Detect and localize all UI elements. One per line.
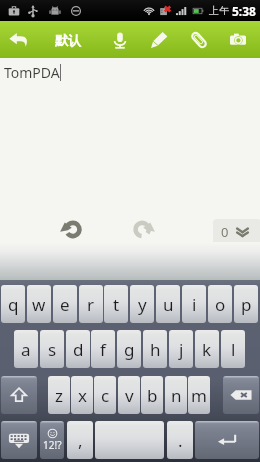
button[interactable]: y [130, 285, 154, 323]
staticText: y [138, 293, 147, 316]
button[interactable]: 默认 [37, 21, 99, 58]
staticText: k [202, 338, 212, 361]
button[interactable]: z [48, 376, 70, 414]
staticText: v [125, 384, 134, 407]
button[interactable]: 12!? [40, 421, 64, 459]
staticText: g [124, 338, 135, 361]
staticText: , [78, 429, 83, 452]
button[interactable]: 0 [213, 219, 260, 245]
button[interactable]: l [221, 330, 245, 368]
staticText: q [8, 293, 19, 316]
button[interactable]: Delete [223, 376, 259, 414]
staticText: . [178, 429, 183, 452]
staticText: w [32, 293, 46, 316]
button[interactable]: a [14, 330, 38, 368]
button[interactable]: Undo [54, 213, 86, 245]
staticText: r [87, 293, 95, 316]
button[interactable]: c [94, 376, 116, 414]
button[interactable]: h [143, 330, 167, 368]
staticText: o [215, 293, 226, 316]
button[interactable]: i [182, 285, 206, 323]
staticText: 上午 [209, 4, 229, 17]
button[interactable]: x [71, 376, 93, 414]
button[interactable]: g [117, 330, 141, 368]
button[interactable]: v [118, 376, 140, 414]
button[interactable]: m [188, 376, 210, 414]
button[interactable]: Hide keyboard [1, 421, 37, 459]
staticText: n [171, 384, 182, 407]
staticText: m [191, 384, 207, 407]
staticText: 12!? [43, 438, 62, 452]
button[interactable]: f [91, 330, 115, 368]
button[interactable]: Camera [219, 21, 257, 58]
staticText: TomPDA [4, 63, 60, 82]
button[interactable]: k [195, 330, 219, 368]
button[interactable]: s [40, 330, 64, 368]
button[interactable]: Shift [1, 376, 37, 414]
button[interactable]: t [104, 285, 128, 323]
button[interactable]: Draw [139, 21, 179, 58]
button[interactable]: j [169, 330, 193, 368]
button[interactable]: r [79, 285, 103, 323]
button[interactable]: , [67, 421, 93, 459]
staticText: i [192, 293, 197, 316]
button[interactable]: d [66, 330, 90, 368]
button[interactable]: Enter [195, 421, 259, 459]
button[interactable]: Back [0, 21, 37, 58]
button[interactable]: e [53, 285, 77, 323]
button[interactable]: Voice record [101, 21, 139, 58]
staticText: 默认 [55, 32, 81, 48]
staticText: a [21, 338, 31, 361]
staticText: f [100, 338, 106, 361]
staticText: b [147, 384, 158, 407]
staticText: u [163, 293, 174, 316]
button[interactable]: u [156, 285, 180, 323]
staticText: 5:38 [232, 3, 256, 19]
button[interactable]: b [141, 376, 163, 414]
button[interactable]: Redo [129, 213, 161, 245]
button[interactable]: n [165, 376, 187, 414]
staticText: j [179, 338, 184, 361]
staticText: 0 [221, 223, 229, 241]
button[interactable]: . [167, 421, 193, 459]
staticText: e [60, 293, 70, 316]
staticText: l [231, 338, 236, 361]
button[interactable]: p [234, 285, 258, 323]
button[interactable] [95, 421, 164, 459]
staticText: s [48, 338, 57, 361]
button[interactable]: Attach [179, 21, 219, 58]
staticText: d [73, 338, 84, 361]
staticText: t [113, 293, 120, 316]
button[interactable]: q [1, 285, 25, 323]
staticText: h [150, 338, 161, 361]
staticText: x [78, 384, 87, 407]
staticText: z [55, 384, 63, 407]
button[interactable]: w [27, 285, 51, 323]
staticText: c [101, 384, 110, 407]
staticText: p [241, 293, 252, 316]
button[interactable]: o [208, 285, 232, 323]
